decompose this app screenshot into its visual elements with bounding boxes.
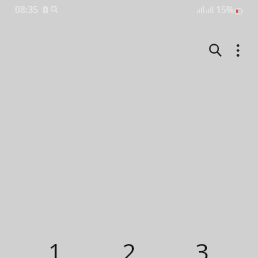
button[interactable]: Search bbox=[197, 32, 233, 68]
button[interactable]: 1 bbox=[18, 227, 92, 258]
button[interactable]: More options bbox=[224, 36, 252, 64]
staticText: 1 bbox=[48, 235, 62, 258]
button[interactable]: 2 bbox=[92, 227, 165, 258]
staticText: 3 bbox=[195, 235, 209, 258]
button[interactable]: 3 bbox=[165, 227, 238, 258]
staticText: 08:35 bbox=[15, 3, 39, 15]
staticText: 15% bbox=[216, 3, 234, 15]
staticText: 2 bbox=[122, 235, 136, 258]
